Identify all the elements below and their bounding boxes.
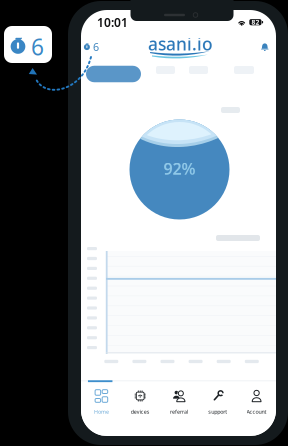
button[interactable]: 6 [4, 26, 52, 63]
button[interactable] [86, 66, 141, 82]
button[interactable]: referral [159, 381, 198, 435]
staticText: Account [247, 408, 267, 415]
staticText: Home [94, 408, 109, 415]
staticText: 6 [31, 32, 44, 62]
staticText: 10:01 [97, 14, 128, 30]
button[interactable]: Notifications [257, 40, 272, 55]
staticText: 92% [163, 158, 195, 179]
staticText: support [208, 408, 227, 415]
button[interactable]: support [198, 381, 237, 435]
staticText: asani.io [148, 32, 213, 55]
staticText: 82 [251, 18, 259, 27]
button[interactable]: devices [121, 381, 160, 435]
staticText: 6 [93, 40, 99, 54]
button[interactable]: 6 [82, 38, 102, 54]
staticText: devices [131, 408, 150, 415]
button[interactable]: Account [237, 381, 276, 435]
staticText: referral [170, 408, 188, 415]
button[interactable]: Home [82, 381, 121, 435]
